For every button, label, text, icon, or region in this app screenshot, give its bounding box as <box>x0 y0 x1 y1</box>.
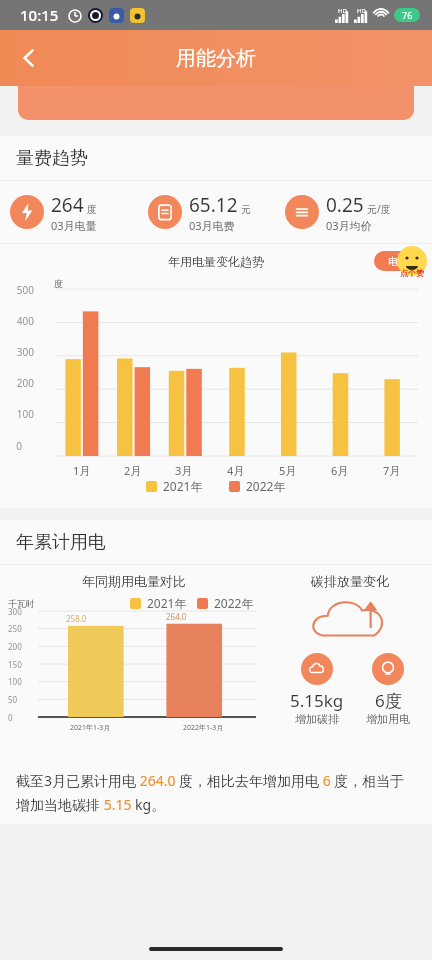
staticText: 2022年1-3月 <box>183 723 224 733</box>
staticText: 76 <box>402 9 413 21</box>
staticText: 5月 <box>279 463 297 478</box>
staticText: 千瓦时 <box>8 598 35 609</box>
button[interactable]: 点个赞 <box>394 244 430 278</box>
button[interactable]: Back <box>8 37 50 79</box>
staticText: 0.25 <box>326 192 364 218</box>
staticText: 元 <box>241 203 251 216</box>
staticText: 264 <box>51 192 84 218</box>
staticText: 2022年 <box>246 478 286 494</box>
staticText: HD <box>338 7 347 15</box>
staticText: 量费趋势 <box>16 147 88 170</box>
staticText: 500 <box>16 283 34 297</box>
staticText: 碳排放量变化 <box>311 573 389 589</box>
staticText: 300 <box>16 345 34 359</box>
staticText: 6月 <box>331 463 349 478</box>
staticText: 2月 <box>124 463 142 478</box>
staticText: 电量 <box>388 255 408 268</box>
staticText: 年同期用电量对比 <box>82 573 186 589</box>
staticText: 150 <box>8 659 22 670</box>
staticText: 03月电量 <box>51 218 97 233</box>
staticText: 2021年1-3月 <box>70 723 111 733</box>
staticText: 度 <box>54 278 63 289</box>
staticText: 250 <box>8 623 22 634</box>
staticText: 6度 <box>375 689 402 712</box>
staticText: 点个赞 <box>400 268 424 278</box>
staticText: 年用电量变化趋势 <box>168 254 264 269</box>
button[interactable]: 6度 <box>366 653 410 726</box>
staticText: 0 <box>8 712 13 723</box>
staticText: 元/度 <box>367 202 391 216</box>
staticText: 增加用电 <box>366 712 410 726</box>
staticText: 300 <box>8 606 22 617</box>
staticText: 2022年 <box>214 595 254 611</box>
button[interactable]: 65.12 <box>148 181 285 243</box>
staticText: 0 <box>16 439 22 453</box>
staticText: 200 <box>8 641 22 652</box>
staticText: 增加碳排 <box>295 712 339 726</box>
staticText: 3月 <box>175 463 193 478</box>
staticText: 50 <box>8 694 18 705</box>
staticText: 7月 <box>383 463 401 478</box>
staticText: 年累计用电 <box>16 531 106 554</box>
staticText: 1月 <box>73 463 91 478</box>
staticText: 03月均价 <box>326 218 372 233</box>
staticText: 200 <box>16 376 34 390</box>
staticText: 100 <box>8 676 22 687</box>
staticText: HD <box>357 7 366 15</box>
button[interactable]: 5.15kg <box>290 653 344 726</box>
button[interactable]: 0.25 <box>285 181 422 243</box>
staticText: 65.12 <box>189 192 238 218</box>
staticText: 4月 <box>227 463 245 478</box>
staticText: 5.15kg <box>290 689 344 712</box>
staticText: 2021年 <box>163 478 203 494</box>
staticText: 258.0 <box>66 613 87 624</box>
staticText: 截至3月已累计用电 264.0 度，相比去年增加用电 6 度，相当于增加当地碳排… <box>16 771 416 814</box>
staticText: 03月电费 <box>189 218 235 233</box>
button[interactable]: 264 <box>10 181 148 243</box>
staticText: 100 <box>16 407 34 421</box>
staticText: 400 <box>16 314 34 328</box>
button[interactable]: 电量 <box>374 251 422 271</box>
staticText: 10:15 <box>20 5 59 25</box>
staticText: 2021年 <box>147 595 187 611</box>
staticText: 264.0 <box>166 611 187 622</box>
staticText: 用能分析 <box>176 46 256 71</box>
staticText: 度 <box>87 203 97 216</box>
